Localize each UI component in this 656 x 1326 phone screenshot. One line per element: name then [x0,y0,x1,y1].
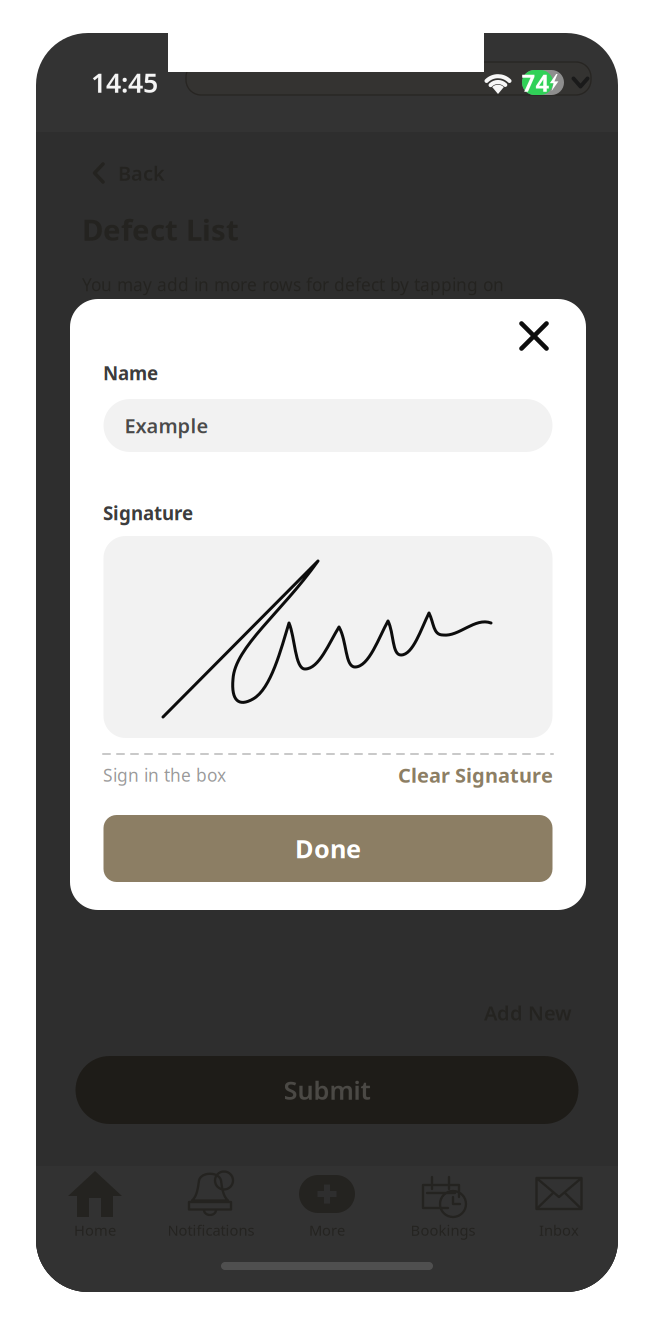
button[interactable]: More [269,1166,385,1244]
staticText: Back [118,160,165,186]
staticText: Sign in the box [103,763,226,786]
staticText: You may add in more rows for defect by t… [82,273,504,296]
staticText: Clear Signature [398,762,553,788]
staticText: 74 [521,67,549,98]
staticText: Example [124,412,208,439]
button[interactable]: Home [37,1166,153,1244]
staticText: Bookings [410,1220,475,1240]
staticText: 14:45 [91,65,158,100]
staticText: Notifications [167,1220,254,1240]
staticText: Submit [283,1073,370,1107]
staticText: Done [295,832,361,865]
staticText: Add New [484,999,572,1026]
button[interactable]: Inbox [501,1166,617,1244]
button[interactable]: Add New [484,999,572,1026]
staticText: Name [103,361,158,385]
button[interactable]: Example [103,399,552,452]
button[interactable]: Notifications [153,1166,269,1244]
staticText: Signature [103,501,193,525]
staticText: Inbox [539,1220,579,1240]
button[interactable]: Clear Signature [398,762,553,788]
button[interactable]: Bookings [385,1166,501,1244]
staticText: Defect List [82,210,239,249]
staticText: Home [74,1220,116,1240]
button[interactable]: Close [510,312,558,360]
staticText: More [309,1220,345,1240]
button[interactable]: Done [103,815,552,882]
button[interactable]: Submit [75,1056,578,1124]
